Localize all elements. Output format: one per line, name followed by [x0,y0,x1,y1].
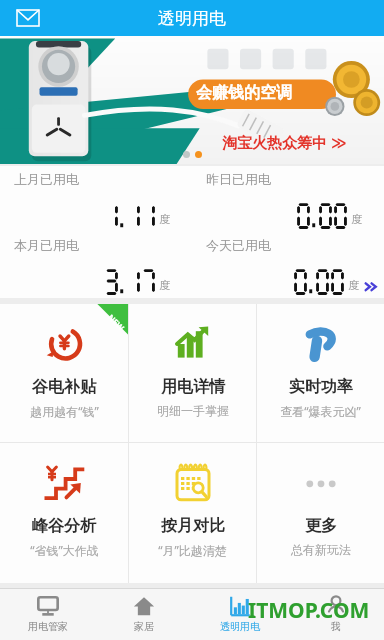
button[interactable]: 用电管家 [0,589,96,640]
button[interactable]: 用电详情 [129,304,256,442]
staticText: 淘宝火热众筹中 ≫ [222,132,347,152]
staticText: NEW [106,312,127,333]
staticText: 峰谷分析 [32,516,96,536]
staticText: 度 [351,212,362,226]
staticText: 越用越有“钱” [30,403,99,419]
staticText: 昨日已用电 [206,171,271,187]
staticText: 透明用电 [220,620,260,633]
staticText: 度 [159,278,170,292]
button[interactable]: 更多 [257,443,384,583]
staticText: ITMOP.COM [248,596,370,625]
staticText: 透明用电 [158,8,226,29]
button[interactable]: Messages [10,0,46,36]
button[interactable]: 实时功率 [257,304,384,442]
button[interactable]: 家居 [96,589,192,640]
staticText: 本月已用电 [14,237,79,253]
staticText: “月”比越清楚 [158,542,227,558]
staticText: 更多 [305,516,337,536]
staticText: 总有新玩法 [291,542,351,557]
button[interactable]: 按月对比 [129,443,256,583]
staticText: 查看“爆表元凶” [280,403,361,419]
staticText: 谷电补贴 [32,377,96,397]
button[interactable]: 透明用电 [192,589,288,640]
button[interactable]: 会赚钱的空调 [0,36,384,164]
button[interactable]: 本月已用电 [0,232,384,298]
staticText: 实时功率 [289,377,353,397]
staticText: “省钱”大作战 [30,542,99,558]
staticText: 按月对比 [161,516,225,536]
button[interactable]: 我 [288,589,384,640]
staticText: 度 [348,278,359,292]
button[interactable]: 上月已用电 [0,166,384,232]
staticText: 会赚钱的空调 [196,83,292,103]
button[interactable]: 峰谷分析 [0,443,128,583]
staticText: 用电详情 [161,377,225,397]
staticText: 今天已用电 [206,237,271,253]
staticText: 度 [159,212,170,226]
button[interactable]: 谷电补贴 [0,304,128,442]
staticText: 上月已用电 [14,171,79,187]
staticText: 用电管家 [28,620,68,633]
staticText: 明细一手掌握 [157,403,229,418]
staticText: 家居 [134,620,154,633]
staticText: 我 [331,620,341,633]
